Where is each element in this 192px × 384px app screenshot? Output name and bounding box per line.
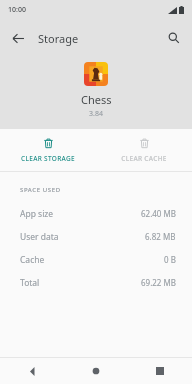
staticText: 3.84 [89, 109, 103, 119]
button[interactable]: CLEAR CACHE [96, 129, 192, 171]
staticText: Chess [81, 92, 112, 107]
button[interactable]: Recents [128, 358, 192, 384]
staticText: 69.22 MB [141, 277, 176, 288]
button[interactable]: Total [20, 271, 176, 294]
button[interactable]: Chess app icon [84, 62, 108, 86]
button[interactable]: Back [0, 358, 64, 384]
staticText: 10:00 [8, 5, 26, 15]
staticText: User data [20, 231, 59, 243]
staticText: Storage [38, 31, 79, 46]
staticText: Total [20, 277, 40, 289]
button[interactable]: User data [20, 225, 176, 248]
staticText: SPACE USED [20, 186, 61, 194]
button[interactable]: CLEAR STORAGE [0, 129, 96, 171]
button[interactable]: Search [156, 20, 192, 56]
button[interactable]: Cache [20, 248, 176, 271]
staticText: 62.40 MB [141, 208, 176, 219]
button[interactable]: Back [0, 20, 36, 56]
staticText: CLEAR STORAGE [21, 154, 75, 163]
button[interactable]: App size [20, 202, 176, 225]
staticText: 0 B [164, 254, 176, 265]
staticText: 6.82 MB [145, 231, 176, 242]
staticText: CLEAR CACHE [121, 154, 167, 163]
staticText: App size [20, 208, 54, 220]
button[interactable]: Home [64, 358, 128, 384]
staticText: Cache [20, 254, 45, 266]
